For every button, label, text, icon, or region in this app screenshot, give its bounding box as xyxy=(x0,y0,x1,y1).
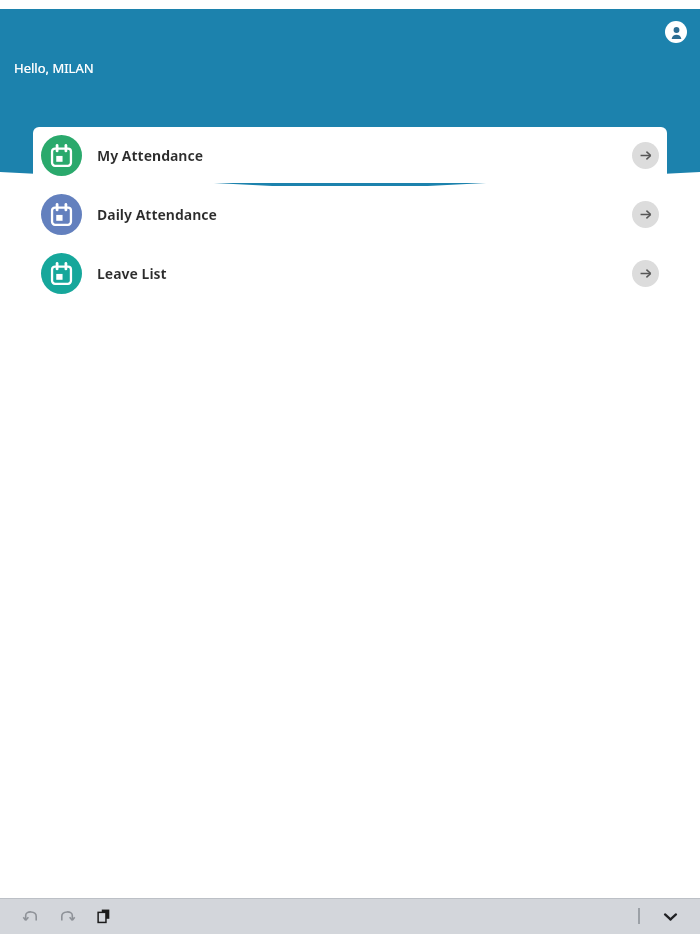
button[interactable]: Redo xyxy=(53,902,81,930)
button[interactable]: Daily Attendance xyxy=(33,186,667,242)
button[interactable]: My Attendance xyxy=(33,127,667,183)
staticText: Leave List xyxy=(97,264,167,283)
button[interactable]: Leave List xyxy=(33,245,667,301)
staticText: My Attendance xyxy=(97,146,204,165)
button[interactable]: Undo xyxy=(16,902,44,930)
staticText: Hello, MILAN xyxy=(14,59,94,77)
button[interactable]: Profile xyxy=(665,21,687,43)
staticText: Daily Attendance xyxy=(97,205,217,224)
button[interactable]: Clipboard xyxy=(90,902,118,930)
button[interactable]: Hide keyboard xyxy=(656,902,684,930)
